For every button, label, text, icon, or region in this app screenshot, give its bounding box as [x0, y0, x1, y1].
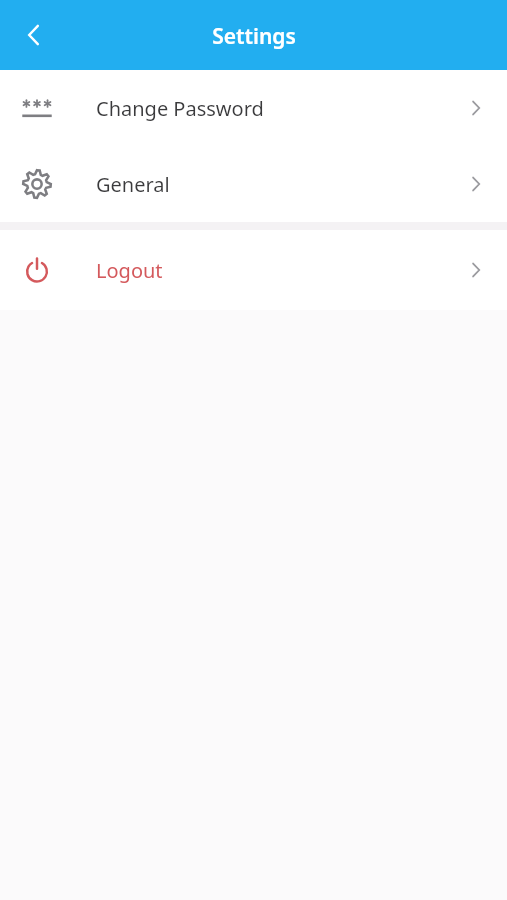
button[interactable]: Change Password [0, 70, 507, 146]
button[interactable]: Logout [0, 230, 507, 310]
staticText: Change Password [96, 95, 264, 122]
button[interactable]: Back [8, 9, 60, 61]
button[interactable]: General [0, 146, 507, 222]
staticText: Settings [212, 22, 296, 51]
staticText: Logout [96, 257, 163, 284]
staticText: General [96, 171, 170, 198]
